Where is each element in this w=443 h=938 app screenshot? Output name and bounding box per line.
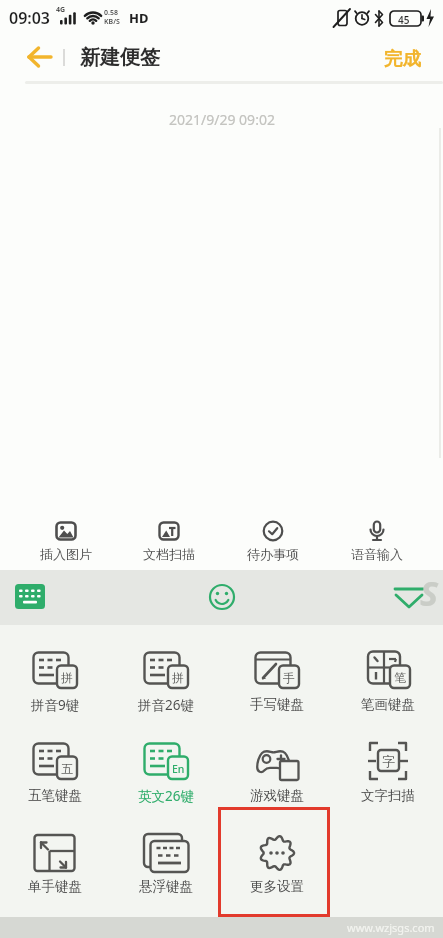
staticText: www.wzjsgs.com [347,920,435,935]
staticText: 手 [283,670,295,685]
button[interactable]: En [110,741,221,809]
button[interactable]: 完成 [372,41,432,75]
staticText: 文档扫描 [143,546,195,562]
staticText: 五笔键盘 [28,787,82,804]
button[interactable]: 手 [221,650,332,718]
button[interactable]: 插入图片 [14,520,117,566]
button[interactable]: 拼 [110,650,221,718]
staticText: 英文26键 [138,787,194,805]
staticText: 新建便签 [80,45,160,70]
button[interactable]: 悬浮键盘 [110,832,221,900]
staticText: 笔画键盘 [361,696,415,713]
staticText: 2021/9/29 09:02 [169,110,275,129]
button[interactable]: 拼 [0,650,110,718]
button[interactable]: 更多设置 [221,832,332,900]
staticText: 悬浮键盘 [139,878,193,895]
staticText: 拼音26键 [138,696,194,714]
button[interactable]: 笔 [332,650,443,718]
button[interactable] [392,583,426,611]
button[interactable] [15,584,45,609]
staticText: En [172,762,185,776]
staticText: 待办事项 [247,546,299,562]
button[interactable]: 五 [0,741,110,809]
staticText: 五 [61,761,73,776]
staticText: 45 [398,13,410,27]
button[interactable]: 语音输入 [325,520,429,566]
staticText: 文字扫描 [361,787,415,804]
staticText: 拼音9键 [31,696,80,714]
staticText: 字 [382,753,395,769]
staticText: 09:03 [9,7,51,29]
staticText: 拼 [61,670,73,685]
button[interactable]: 待办事项 [221,520,325,566]
button[interactable]: 文档扫描 [117,520,221,566]
staticText: S [420,570,439,616]
staticText: 更多设置 [250,878,304,895]
staticText: 手写键盘 [250,696,304,713]
staticText: 单手键盘 [28,878,82,895]
staticText: 完成 [384,47,421,70]
button[interactable]: 字 [332,741,443,809]
staticText: HD [129,9,149,27]
staticText: 拼 [172,670,184,685]
button[interactable]: 游戏键盘 [221,741,332,809]
staticText: 语音输入 [351,546,403,562]
staticText: 游戏键盘 [250,787,304,804]
staticText: 0.58 KB/S [104,8,120,26]
staticText: 插入图片 [40,546,92,562]
staticText: 4G [56,5,66,15]
button[interactable]: 单手键盘 [0,832,110,900]
staticText: 笔 [394,670,406,685]
button[interactable] [22,42,58,72]
button[interactable] [207,582,237,612]
